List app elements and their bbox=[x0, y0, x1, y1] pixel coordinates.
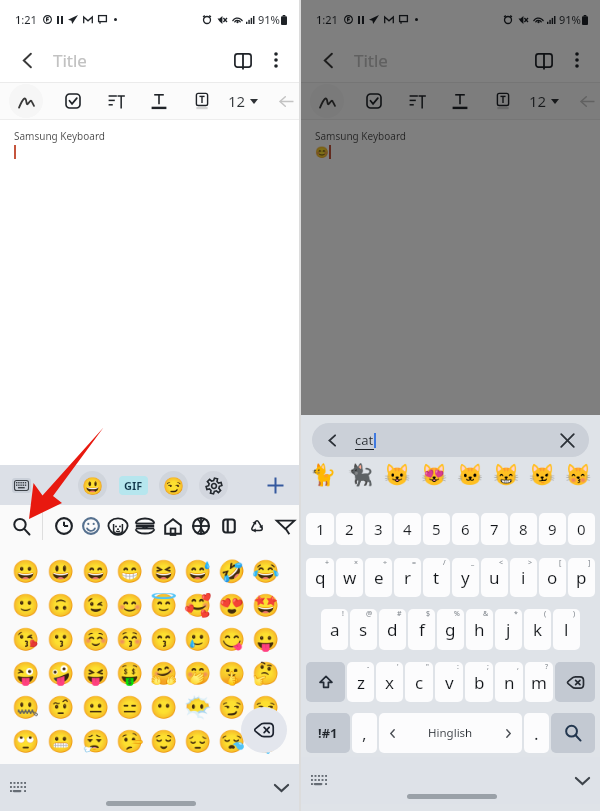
button[interactable]: More options bbox=[561, 44, 593, 76]
button[interactable]: ☺️ bbox=[78, 623, 113, 657]
button[interactable] bbox=[50, 505, 77, 547]
button[interactable]: 🤣 bbox=[215, 555, 249, 589]
button[interactable]: 🤪 bbox=[43, 657, 78, 691]
button[interactable]: 😙 bbox=[147, 623, 181, 657]
button[interactable] bbox=[77, 505, 104, 547]
button[interactable]: Search bbox=[0, 505, 42, 547]
button[interactable]: Text colour bbox=[443, 84, 477, 118]
button[interactable]: Text colour bbox=[142, 84, 176, 118]
button[interactable]: Backspace bbox=[555, 662, 595, 702]
button[interactable]: 😅 bbox=[181, 555, 215, 589]
button[interactable]: 😃 bbox=[78, 471, 107, 500]
button[interactable]: 😗 bbox=[43, 623, 78, 657]
button[interactable]: 🤫 bbox=[215, 657, 249, 691]
button[interactable]: , bbox=[495, 662, 523, 702]
button[interactable]: ] bbox=[568, 558, 595, 597]
button[interactable]: , bbox=[352, 713, 377, 753]
button[interactable]: Backspace bbox=[241, 707, 287, 753]
button[interactable]: Keyboard layout bbox=[3, 772, 33, 802]
button[interactable]: Reading view bbox=[226, 43, 260, 77]
button[interactable]: = bbox=[394, 558, 421, 597]
button[interactable]: 1 bbox=[306, 513, 334, 545]
button[interactable]: ( bbox=[524, 609, 551, 650]
button[interactable]: 12 bbox=[526, 84, 562, 118]
button[interactable]: 😏 bbox=[159, 471, 188, 500]
button[interactable]: 😜 bbox=[8, 657, 43, 691]
button[interactable]: 😋 bbox=[215, 623, 249, 657]
button[interactable]: 😽 bbox=[560, 460, 596, 490]
button[interactable]: 2 bbox=[336, 513, 363, 545]
button[interactable]: 🙃 bbox=[43, 589, 78, 623]
button[interactable]: 7 bbox=[481, 513, 508, 545]
button[interactable]: !#1 bbox=[306, 713, 350, 753]
button[interactable]: @ bbox=[350, 609, 377, 650]
button[interactable]: Hinglish bbox=[379, 713, 522, 753]
button[interactable]: 🙄 bbox=[8, 725, 43, 759]
button[interactable]: More options bbox=[260, 44, 292, 76]
button[interactable]: 0 bbox=[568, 513, 595, 545]
button[interactable]: 😼 bbox=[524, 460, 560, 490]
button[interactable]: Pen bbox=[310, 84, 344, 118]
button[interactable]: 🐈 bbox=[305, 460, 342, 490]
button[interactable]: Checklist bbox=[56, 84, 90, 118]
button[interactable]: 😮‍💨 bbox=[78, 725, 113, 759]
button[interactable]: Reading view bbox=[527, 43, 561, 77]
button[interactable]: 😔 bbox=[181, 725, 215, 759]
button[interactable] bbox=[187, 505, 215, 547]
button[interactable]: 🤐 bbox=[8, 691, 43, 725]
button[interactable]: Undo bbox=[570, 84, 600, 118]
button[interactable]: Hide keyboard bbox=[567, 766, 597, 796]
button[interactable]: Search bbox=[551, 713, 595, 753]
button[interactable]: 😶 bbox=[147, 691, 181, 725]
button[interactable]: 🤔 bbox=[249, 657, 283, 691]
button[interactable]: 🤩 bbox=[249, 589, 283, 623]
button[interactable]: : bbox=[435, 662, 463, 702]
button[interactable]: 😬 bbox=[43, 725, 78, 759]
button[interactable]: 😪 bbox=[215, 725, 249, 759]
button[interactable]: Hide keyboard bbox=[266, 773, 296, 803]
button[interactable]: # bbox=[379, 609, 406, 650]
button[interactable]: ; bbox=[465, 662, 493, 702]
button[interactable]: Back bbox=[9, 42, 45, 78]
button[interactable] bbox=[104, 505, 131, 547]
button[interactable]: Keyboard bbox=[12, 478, 31, 493]
button[interactable]: Keyboard layout bbox=[304, 765, 334, 795]
button[interactable]: - bbox=[347, 662, 374, 702]
button[interactable]: 🤨 bbox=[43, 691, 78, 725]
button[interactable]: 9 bbox=[539, 513, 566, 545]
button[interactable]: 😌 bbox=[147, 725, 181, 759]
button[interactable]: 🥰 bbox=[181, 589, 215, 623]
button[interactable]: 😸 bbox=[488, 460, 524, 490]
button[interactable]: * bbox=[495, 609, 522, 650]
button[interactable]: Undo bbox=[269, 84, 303, 118]
button[interactable]: ÷ bbox=[365, 558, 392, 597]
button[interactable]: 😍 bbox=[215, 589, 249, 623]
button[interactable]: 😃 bbox=[43, 555, 78, 589]
button[interactable]: 😏 bbox=[215, 691, 249, 725]
button[interactable]: 3 bbox=[365, 513, 392, 545]
button[interactable]: [ bbox=[539, 558, 566, 597]
button[interactable]: 😘 bbox=[8, 623, 43, 657]
button[interactable]: Text background bbox=[486, 84, 520, 118]
button[interactable]: 😶‍🌫️ bbox=[181, 691, 215, 725]
button[interactable]: 😉 bbox=[78, 589, 113, 623]
button[interactable]: 🤑 bbox=[113, 657, 147, 691]
button[interactable]: < bbox=[481, 558, 508, 597]
button[interactable]: Add bbox=[260, 470, 290, 500]
button[interactable]: > bbox=[510, 558, 537, 597]
button[interactable]: / bbox=[423, 558, 450, 597]
button[interactable]: 🥲 bbox=[181, 623, 215, 657]
button[interactable]: 😺 bbox=[379, 460, 416, 490]
button[interactable]: 😒 bbox=[249, 691, 283, 725]
button[interactable] bbox=[131, 505, 159, 547]
button[interactable]: 😑 bbox=[113, 691, 147, 725]
button[interactable]: 😀 bbox=[8, 555, 43, 589]
button[interactable]: 5 bbox=[423, 513, 450, 545]
button[interactable]: . bbox=[524, 713, 549, 753]
button[interactable]: _ bbox=[452, 558, 479, 597]
button[interactable]: $ bbox=[408, 609, 435, 650]
button[interactable]: ) bbox=[553, 609, 580, 650]
button[interactable]: & bbox=[466, 609, 493, 650]
button[interactable]: 😐 bbox=[78, 691, 113, 725]
button[interactable]: 🐈‍⬛ bbox=[342, 460, 379, 490]
